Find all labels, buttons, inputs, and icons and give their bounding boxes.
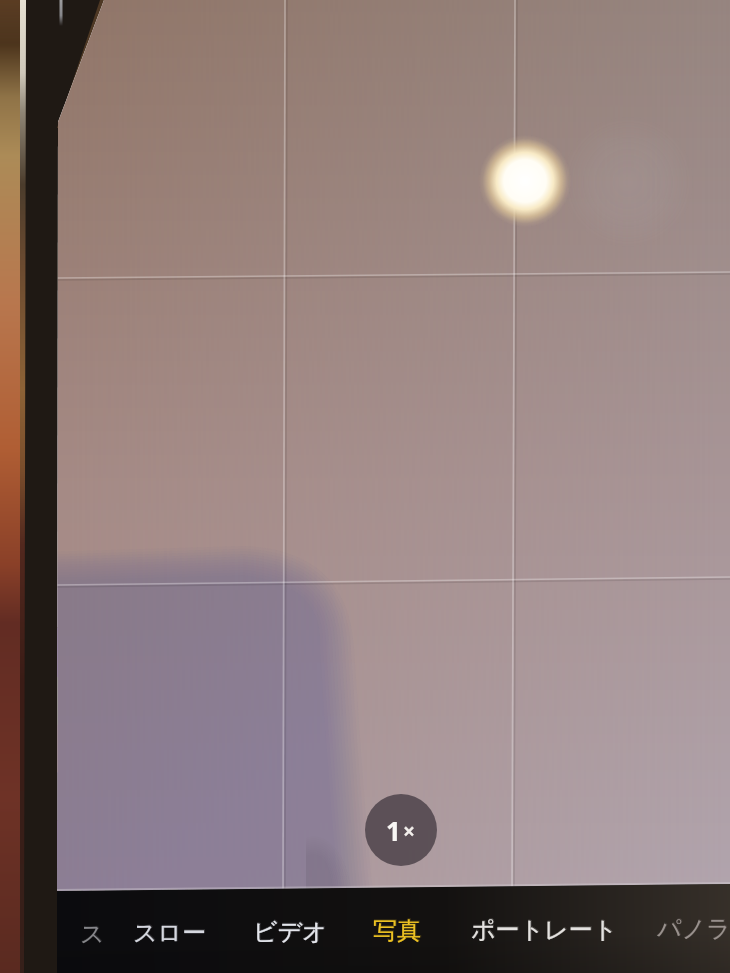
staticText: ポートレート <box>471 915 618 945</box>
staticText: ビデオ <box>253 917 327 947</box>
button[interactable]: スロー <box>133 918 207 948</box>
staticText: ポートレート <box>471 915 618 945</box>
staticText: ス <box>80 919 105 949</box>
staticText: 1 <box>386 813 401 848</box>
button[interactable]: 写真 <box>373 916 421 946</box>
staticText: パノラ <box>657 914 730 944</box>
staticText: × <box>403 817 416 846</box>
button[interactable]: ビデオ <box>253 917 327 947</box>
button[interactable]: ス <box>80 919 105 949</box>
button[interactable]: パノラ <box>657 914 730 944</box>
staticText: ビデオ <box>253 917 327 947</box>
button[interactable]: ポートレート <box>471 915 618 945</box>
staticText: スロー <box>133 918 207 948</box>
staticText: パノラ <box>657 914 730 944</box>
button[interactable]: 1x zoom <box>365 794 437 866</box>
staticText: 写真 <box>373 916 421 946</box>
staticText: ス <box>80 919 105 949</box>
staticText: 写真 <box>373 916 421 946</box>
staticText: スロー <box>133 918 207 948</box>
